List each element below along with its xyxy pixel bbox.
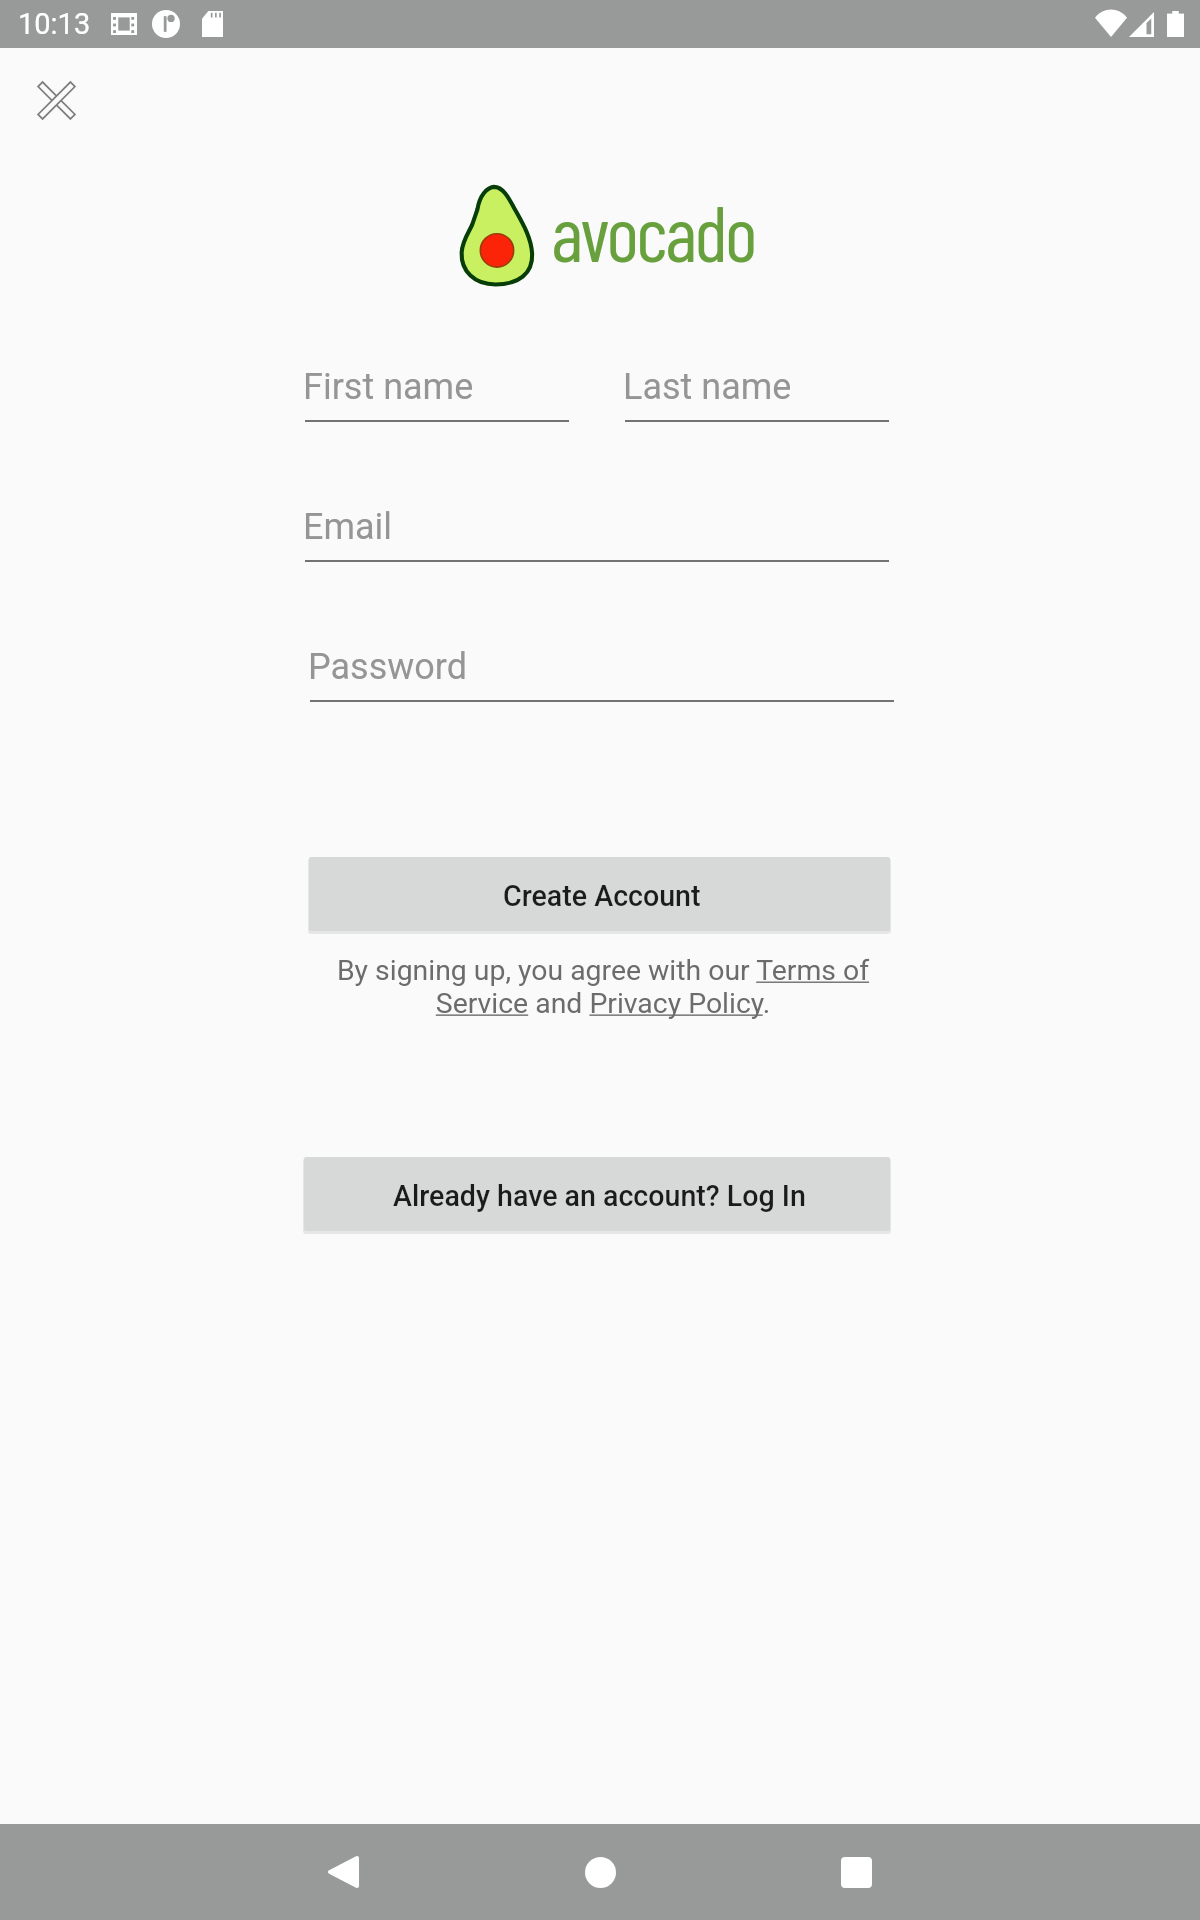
staticText: First name: [303, 366, 474, 408]
staticText: Already have an account? Log In: [393, 1179, 806, 1213]
button[interactable]: Email: [305, 501, 889, 562]
staticText: Email: [303, 506, 393, 548]
staticText: 10:13: [18, 7, 91, 41]
button[interactable]: Last name: [625, 361, 889, 422]
button[interactable]: Password: [310, 641, 894, 702]
staticText: avocado: [551, 184, 755, 278]
staticText: Last name: [623, 366, 792, 408]
staticText: By signing up, you agree with our Terms …: [311, 954, 895, 1020]
staticText: Password: [308, 646, 468, 688]
button[interactable]: Back: [294, 1824, 390, 1920]
button[interactable]: First name: [305, 361, 569, 422]
button[interactable]: Recent apps: [808, 1824, 904, 1920]
button[interactable]: Close: [8, 52, 104, 148]
button[interactable]: Home: [552, 1824, 648, 1920]
staticText: Create Account: [503, 879, 701, 913]
button[interactable]: Create Account: [309, 857, 890, 931]
button[interactable]: Already have an account? Log In: [304, 1157, 890, 1231]
